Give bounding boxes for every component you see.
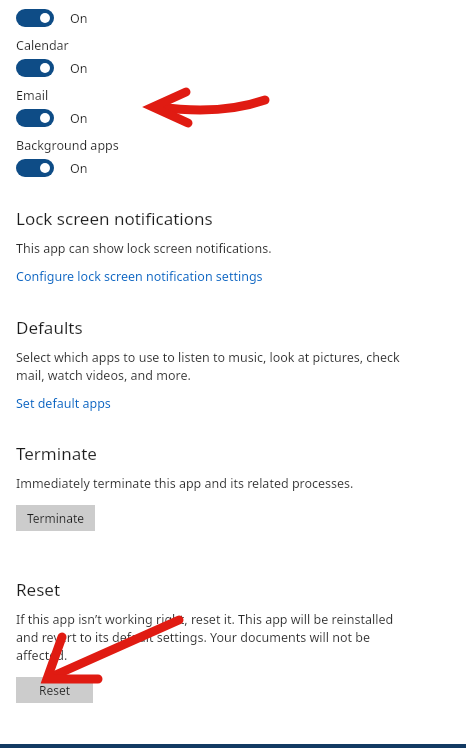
button[interactable]: Terminate [16,505,95,531]
staticText: Configure lock screen notification setti… [16,268,263,285]
staticText: Reset [16,578,61,601]
staticText: Email [16,87,49,104]
button[interactable]: Set default apps [16,394,111,413]
staticText: On [70,110,88,127]
staticText: Terminate [16,442,97,465]
button[interactable]: Toggle setting on or off [16,9,88,27]
button[interactable]: Toggle Email on or off [16,109,88,127]
staticText: On [70,60,88,77]
staticText: Background apps [16,137,119,154]
staticText: Immediately terminate this app and its r… [16,475,354,492]
staticText: Calendar [16,37,69,54]
button[interactable]: Configure lock screen notification setti… [16,267,263,286]
button[interactable]: Toggle Calendar on or off [16,59,88,77]
staticText: Defaults [16,316,83,339]
staticText: Lock screen notifications [16,207,213,230]
staticText: If this app isn’t working right, reset i… [16,611,394,664]
staticText: On [70,160,88,177]
button[interactable]: Toggle Background apps on or off [16,159,88,177]
button[interactable]: Reset [16,677,93,703]
staticText: Select which apps to use to listen to mu… [16,349,400,384]
staticText: Set default apps [16,395,111,412]
staticText: On [70,10,88,27]
staticText: Terminate [27,510,85,526]
staticText: This app can show lock screen notificati… [16,240,272,257]
staticText: Reset [39,682,71,698]
